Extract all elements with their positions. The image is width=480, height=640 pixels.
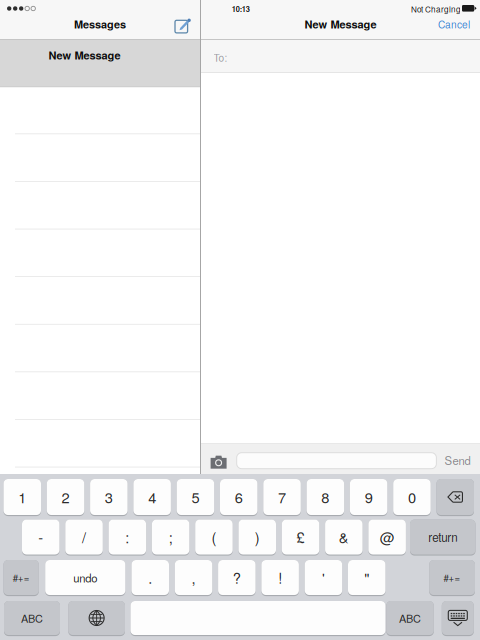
staticText: To: — [213, 50, 227, 64]
staticText: 8 — [321, 486, 329, 507]
button[interactable]: Take photo — [205, 450, 231, 470]
button[interactable]: & — [325, 519, 363, 554]
staticText: New Message — [48, 47, 120, 63]
button[interactable]: ABC — [386, 601, 434, 635]
staticText: / — [82, 526, 86, 547]
button[interactable]: 9 — [350, 479, 387, 515]
button[interactable]: 3 — [90, 479, 128, 515]
staticText: Messages — [74, 16, 126, 32]
staticText: ! — [278, 567, 282, 588]
button[interactable]: 7 — [263, 479, 301, 515]
button[interactable]: ; — [152, 519, 189, 554]
staticText: 6 — [235, 486, 243, 507]
button[interactable]: Compose new message — [166, 12, 196, 38]
staticText: 2 — [61, 486, 69, 507]
button[interactable]: 6 — [220, 479, 257, 515]
staticText: 4 — [148, 486, 156, 507]
button[interactable]: return — [410, 519, 475, 554]
staticText: ' — [322, 567, 325, 588]
staticText: New Message — [304, 16, 376, 32]
staticText: ( — [211, 526, 216, 547]
button[interactable]: Cancel — [417, 17, 470, 31]
button[interactable]: - — [22, 519, 59, 554]
button[interactable]: . — [131, 560, 169, 595]
button[interactable]: " — [348, 560, 385, 595]
button[interactable]: ! — [261, 560, 299, 595]
staticText: 5 — [191, 486, 199, 507]
button[interactable]: 2 — [47, 479, 84, 515]
button[interactable]: £ — [282, 519, 319, 554]
staticText: ) — [255, 526, 260, 547]
staticText: - — [38, 526, 43, 547]
staticText: . — [148, 567, 152, 588]
button[interactable] — [68, 601, 125, 635]
button[interactable]: ? — [218, 560, 256, 595]
button[interactable]: , — [175, 560, 212, 595]
button[interactable]: ABC — [4, 601, 60, 635]
staticText: ? — [233, 567, 241, 588]
staticText: ABC — [21, 610, 43, 626]
button[interactable]: 1 — [3, 479, 41, 515]
button[interactable] — [442, 601, 474, 635]
staticText: Send — [445, 452, 471, 468]
staticText: 0 — [408, 486, 416, 507]
button[interactable]: 0 — [393, 479, 431, 515]
button[interactable]: 4 — [133, 479, 171, 515]
staticText: & — [339, 526, 349, 547]
button[interactable]: #+= — [429, 560, 475, 595]
staticText: 7 — [278, 486, 286, 507]
staticText: £ — [296, 526, 304, 547]
button[interactable]: undo — [45, 560, 125, 595]
button[interactable]: New Message — [0, 40, 200, 87]
staticText: 3 — [105, 486, 113, 507]
staticText: 1 — [18, 486, 26, 507]
staticText: undo — [73, 569, 97, 586]
staticText: Cancel — [438, 17, 470, 31]
staticText: ; — [169, 526, 173, 547]
button[interactable]: : — [109, 519, 146, 554]
button[interactable]: #+= — [3, 560, 39, 595]
button[interactable]: ) — [238, 519, 276, 554]
button[interactable]: ' — [305, 560, 342, 595]
staticText: ABC — [399, 610, 421, 626]
button[interactable] — [130, 601, 385, 635]
staticText: , — [192, 567, 196, 588]
button[interactable]: 5 — [177, 479, 214, 515]
button[interactable]: @ — [368, 519, 406, 554]
button[interactable]: 8 — [307, 479, 344, 515]
staticText: 10:13 — [232, 4, 250, 14]
button[interactable]: / — [65, 519, 103, 554]
button[interactable]: Send — [440, 452, 480, 468]
staticText: : — [125, 526, 129, 547]
staticText: Not Charging — [411, 3, 461, 15]
staticText: return — [428, 529, 457, 545]
staticText: " — [364, 567, 369, 588]
button[interactable] — [436, 479, 474, 515]
staticText: #+= — [13, 571, 30, 584]
staticText: 9 — [365, 486, 373, 507]
staticText: #+= — [444, 571, 461, 584]
button[interactable]: ( — [195, 519, 233, 554]
staticText: @ — [380, 526, 395, 547]
